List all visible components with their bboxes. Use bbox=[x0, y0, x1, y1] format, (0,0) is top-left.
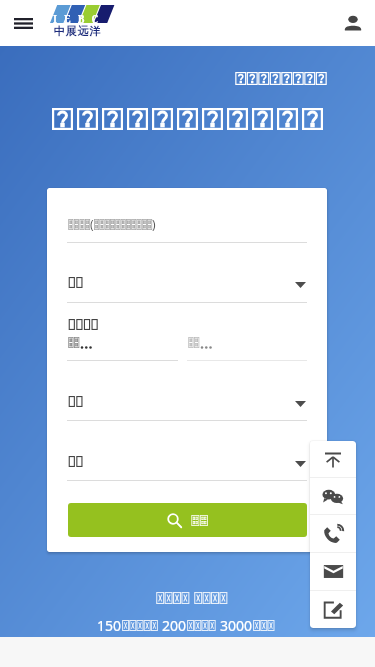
button[interactable]: Account bbox=[330, 0, 375, 46]
button[interactable]: Email bbox=[310, 553, 356, 590]
staticText: 中展远洋 bbox=[53, 24, 101, 38]
button[interactable]: Menu bbox=[2, 2, 44, 44]
button[interactable] bbox=[68, 503, 307, 537]
staticText: ( bbox=[90, 216, 94, 232]
staticText: 200 bbox=[162, 616, 187, 635]
button[interactable]: WeChat bbox=[310, 478, 356, 514]
staticText: ) bbox=[152, 216, 156, 232]
staticText: 3000 bbox=[220, 616, 253, 635]
button[interactable]: Call us bbox=[310, 515, 356, 552]
staticText: 150 bbox=[97, 616, 122, 635]
button[interactable]: Feedback bbox=[310, 591, 356, 628]
button[interactable]: Scroll to top bbox=[310, 441, 356, 477]
staticText: IEBC bbox=[53, 12, 106, 26]
